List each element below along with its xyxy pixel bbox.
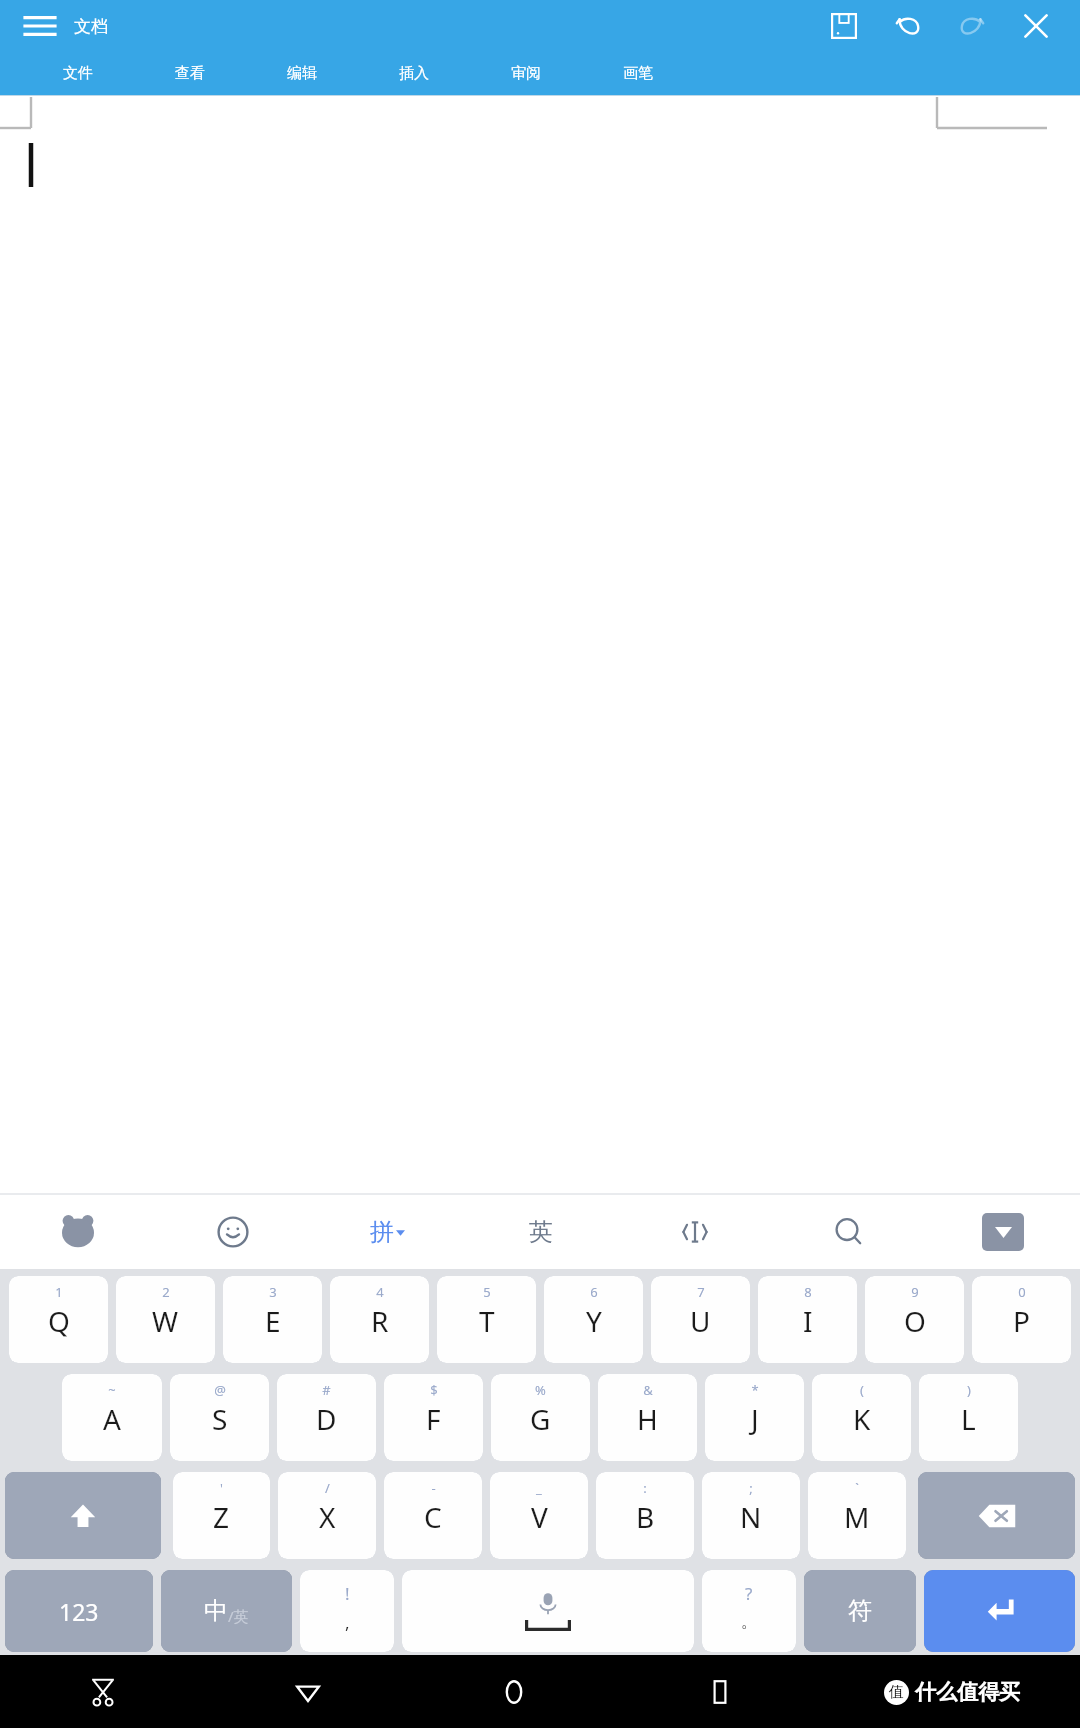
staticText: ` [855,1479,859,1497]
button[interactable]: : [596,1472,694,1559]
staticText: W [152,1302,179,1340]
staticText: _ [536,1479,542,1497]
staticText: 文件 [63,64,93,83]
button[interactable]: Symbols [804,1570,916,1652]
staticText: L [961,1400,976,1438]
button[interactable]: $ [384,1374,483,1461]
button[interactable]: 编辑 [246,52,358,95]
button[interactable]: ; [702,1472,800,1559]
button[interactable]: Chinese English toggle [161,1570,292,1652]
staticText: D [316,1400,337,1438]
button[interactable]: 5 [437,1276,536,1363]
button[interactable]: 8 [758,1276,857,1363]
button[interactable]: % [491,1374,590,1461]
button[interactable]: 2 [116,1276,215,1363]
button[interactable]: Redo [940,0,1004,52]
button[interactable]: 画笔 [582,52,694,95]
staticText: Q [48,1302,70,1340]
button[interactable]: 1 [9,1276,108,1363]
staticText: ? [745,1582,753,1605]
button[interactable]: 插入 [358,52,470,95]
button[interactable]: ` [808,1472,906,1559]
staticText: Z [213,1498,230,1536]
staticText: 插入 [399,64,429,83]
button[interactable]: Recents [617,1655,823,1728]
staticText: 4 [376,1283,384,1301]
button[interactable]: 3 [223,1276,322,1363]
button[interactable]: Home [411,1655,617,1728]
staticText: H [637,1400,658,1438]
button[interactable]: ! [300,1570,394,1652]
button[interactable]: Backspace [918,1472,1075,1559]
staticText: 123 [59,1596,99,1627]
button[interactable]: # [277,1374,376,1461]
staticText: M [844,1498,870,1536]
button[interactable]: - [384,1472,482,1559]
staticText: 。 [741,1611,758,1632]
button[interactable]: Emoji [155,1194,310,1269]
staticText: ) [967,1381,971,1399]
button[interactable]: 4 [330,1276,429,1363]
staticText: 5 [483,1283,491,1301]
button[interactable]: Pinyin mode [310,1194,464,1269]
staticText: K [853,1400,871,1438]
staticText: @ [214,1381,226,1399]
button[interactable]: 9 [865,1276,964,1363]
button[interactable]: ) [919,1374,1018,1461]
staticText: 画笔 [623,64,653,83]
staticText: ( [860,1381,864,1399]
staticText: T [479,1302,495,1340]
button[interactable]: Undo [876,0,940,52]
button[interactable]: Shift [5,1472,161,1559]
staticText: 2 [162,1283,170,1301]
staticText: E [265,1302,281,1340]
button[interactable]: ( [812,1374,911,1461]
button[interactable]: Cursor move [618,1194,772,1269]
staticText: / [325,1479,330,1497]
staticText: O [904,1302,926,1340]
staticText: J [751,1400,759,1438]
button[interactable]: 查看 [134,52,246,95]
button[interactable]: * [705,1374,804,1461]
staticText: 0 [1018,1283,1026,1301]
button[interactable]: Menu [20,6,60,46]
button[interactable]: Save [812,0,876,52]
button[interactable]: 审阅 [470,52,582,95]
button[interactable]: 文件 [22,52,134,95]
staticText: 3 [269,1283,277,1301]
button[interactable]: / [278,1472,376,1559]
button[interactable]: Screenshot [0,1655,205,1728]
button[interactable]: @ [170,1374,269,1461]
button[interactable]: Enter [924,1570,1075,1652]
staticText: 什么值得买 [915,1679,1020,1705]
staticText: 中 [204,1596,228,1626]
button[interactable]: Search [772,1194,926,1269]
button[interactable]: 0 [972,1276,1071,1363]
button[interactable]: ' [173,1472,270,1559]
staticText: 值 [889,1683,904,1702]
button[interactable]: ~ [62,1374,162,1461]
button[interactable]: _ [490,1472,588,1559]
button[interactable]: 6 [544,1276,643,1363]
button[interactable]: English mode [464,1194,618,1269]
staticText: % [535,1381,546,1399]
staticText: X [319,1498,336,1536]
staticText: # [322,1381,331,1399]
staticText: F [426,1400,441,1438]
button[interactable]: Back [205,1655,411,1728]
button[interactable]: & [598,1374,697,1461]
button[interactable]: ? [702,1570,796,1652]
button[interactable]: Numbers [5,1570,153,1652]
button[interactable]: Close [1004,0,1068,52]
staticText: I [803,1302,813,1340]
button[interactable]: Space [402,1570,694,1652]
staticText: , [345,1611,350,1634]
button[interactable]: 7 [651,1276,750,1363]
staticText: 编辑 [287,64,317,83]
staticText: ; [749,1479,753,1497]
staticText: : [643,1479,647,1497]
button[interactable]: Baidu input [0,1194,155,1269]
staticText: 审阅 [511,64,541,83]
staticText: C [424,1498,442,1536]
button[interactable]: Hide keyboard [926,1194,1080,1269]
